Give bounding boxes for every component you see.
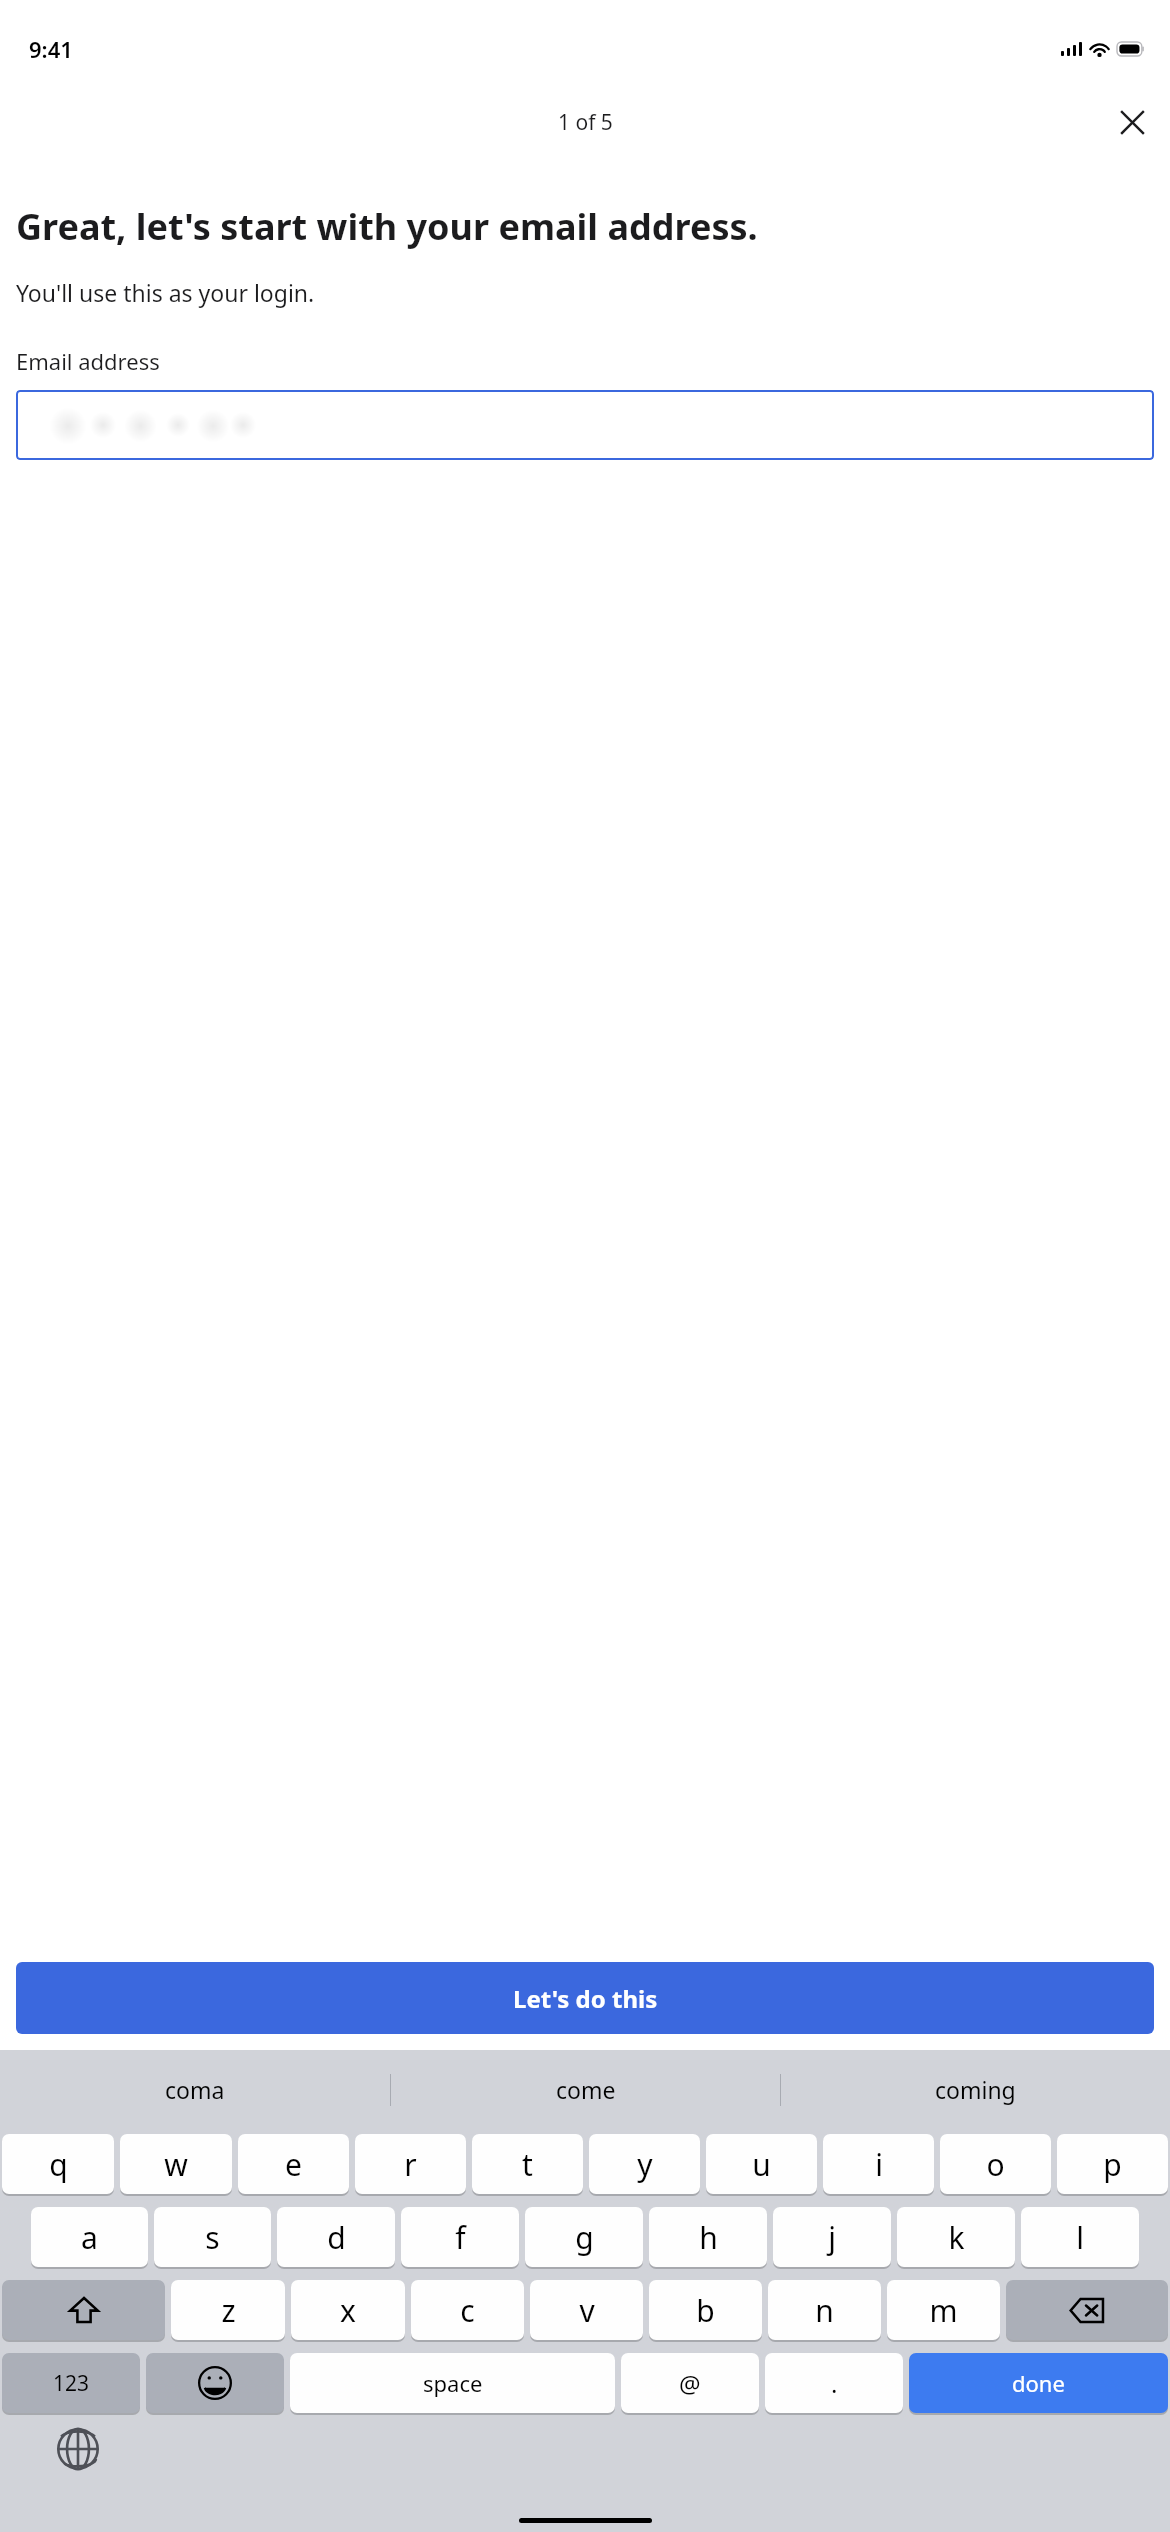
staticText: r [404,2144,417,2185]
staticText: b [696,2290,715,2331]
button[interactable]: space [290,2353,615,2413]
staticText: w [164,2144,188,2185]
staticText: Email address [16,346,160,376]
staticText: q [49,2144,68,2185]
button[interactable]: b [649,2280,762,2340]
staticText: You'll use this as your login. [16,277,315,308]
staticText: space [423,2368,483,2398]
button[interactable]: c [411,2280,524,2340]
staticText: v [579,2290,595,2331]
button[interactable]: Backspace [1006,2280,1168,2340]
button[interactable]: m [887,2280,1000,2340]
staticText: . [831,2367,838,2400]
staticText: t [522,2144,533,2185]
button[interactable]: w [120,2134,232,2194]
staticText: o [986,2144,1005,2185]
button[interactable]: f [401,2207,519,2267]
staticText: j [828,2217,836,2258]
staticText: come [556,2074,616,2105]
button[interactable]: Close [1104,94,1160,150]
button[interactable]: 123 [2,2353,140,2413]
staticText: @ [679,2367,701,2400]
staticText: l [1076,2217,1084,2258]
button[interactable]: l [1021,2207,1139,2267]
button[interactable]: k [897,2207,1015,2267]
staticText: y [637,2144,653,2185]
button[interactable]: i [823,2134,934,2194]
button[interactable]: v [530,2280,643,2340]
button[interactable]: Change keyboard [56,2427,100,2471]
button[interactable]: done [909,2353,1168,2413]
button[interactable]: coma [0,2050,390,2129]
staticText: a [81,2217,98,2258]
button[interactable]: g [525,2207,643,2267]
staticText: p [1103,2144,1122,2185]
staticText: h [699,2217,718,2258]
button[interactable]: u [706,2134,817,2194]
staticText: coma [165,2074,225,2105]
button[interactable]: . [765,2353,903,2413]
staticText: 9:41 [29,34,73,64]
staticText: f [455,2217,466,2258]
button[interactable]: @ [621,2353,759,2413]
staticText: d [327,2217,346,2258]
button[interactable]: d [277,2207,395,2267]
staticText: z [221,2290,236,2331]
staticText: g [575,2217,594,2258]
staticText: done [1012,2368,1065,2398]
staticText: k [948,2217,965,2258]
staticText: coming [935,2074,1016,2105]
button[interactable]: Shift [2,2280,165,2340]
button[interactable]: h [649,2207,767,2267]
button[interactable]: n [768,2280,881,2340]
button[interactable]: y [589,2134,700,2194]
staticText: i [875,2144,883,2185]
button[interactable]: j [773,2207,891,2267]
button[interactable]: come [391,2050,780,2129]
button[interactable]: e [238,2134,349,2194]
staticText: 123 [53,2369,90,2398]
staticText: n [815,2290,834,2331]
button[interactable]: q [2,2134,114,2194]
button[interactable]: t [472,2134,583,2194]
button[interactable]: p [1057,2134,1168,2194]
button[interactable]: Let's do this [16,1962,1154,2034]
staticText: c [460,2290,475,2331]
button[interactable]: s [154,2207,271,2267]
button[interactable]: x [291,2280,405,2340]
staticText: x [340,2290,356,2331]
staticText: Great, let's start with your email addre… [16,202,758,251]
button[interactable]: Emoji [146,2353,284,2413]
button[interactable]: z [171,2280,285,2340]
staticText: s [205,2217,220,2258]
button[interactable] [16,390,1154,460]
staticText: 1 of 5 [558,108,613,137]
staticText: Let's do this [513,1982,658,2015]
button[interactable]: a [31,2207,148,2267]
button[interactable]: coming [781,2050,1170,2129]
button[interactable]: r [355,2134,466,2194]
button[interactable]: o [940,2134,1051,2194]
staticText: e [285,2144,302,2185]
staticText: u [752,2144,771,2185]
staticText: m [929,2290,958,2331]
